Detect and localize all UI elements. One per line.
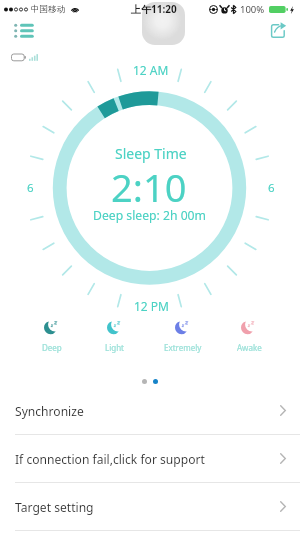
- staticText: 12 PM: [134, 298, 169, 314]
- staticText: 2:10: [111, 161, 187, 213]
- staticText: Target setting: [15, 499, 94, 515]
- button[interactable]: Synchronize: [0, 387, 300, 435]
- button[interactable]: If connection fail,click for support: [0, 435, 300, 483]
- staticText: 6: [27, 180, 34, 196]
- button[interactable]: Share: [269, 22, 287, 40]
- button[interactable]: Awake: [219, 317, 279, 357]
- staticText: 上午11:20: [131, 2, 177, 16]
- staticText: If connection fail,click for support: [15, 451, 205, 467]
- staticText: 6: [268, 180, 275, 196]
- button[interactable]: Menu: [12, 21, 38, 42]
- button[interactable]: Light: [85, 317, 145, 357]
- staticText: Light: [105, 342, 125, 353]
- staticText: 中国移动: [31, 4, 66, 15]
- staticText: Awake: [237, 342, 262, 353]
- staticText: Deep sleep: 2h 00m: [93, 207, 206, 224]
- staticText: 12 AM: [133, 62, 169, 78]
- staticText: Deep: [42, 342, 62, 353]
- button[interactable]: Extremely: [153, 317, 213, 357]
- staticText: Extremely: [164, 342, 202, 353]
- button[interactable]: Target setting: [0, 483, 300, 531]
- staticText: Synchronize: [15, 403, 84, 419]
- staticText: 100%: [240, 3, 265, 16]
- staticText: Sleep Time: [115, 144, 187, 163]
- button[interactable]: Deep: [22, 317, 82, 357]
